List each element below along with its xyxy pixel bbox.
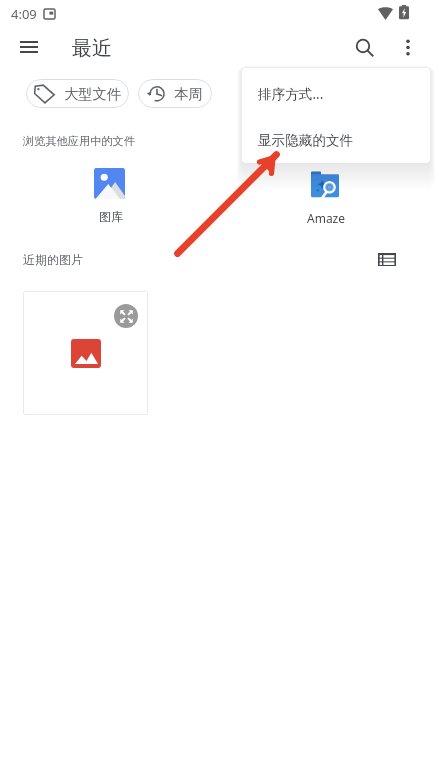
staticText: 排序方式...	[258, 84, 324, 103]
button[interactable]: 大型文件	[26, 79, 129, 108]
staticText: 浏览其他应用中的文件	[23, 134, 135, 148]
button[interactable]: Amaze	[297, 165, 353, 227]
staticText: 4:09	[11, 5, 37, 23]
button[interactable]: 排序方式...	[242, 68, 430, 118]
button[interactable]: Menu	[8, 34, 50, 60]
button[interactable]: Expand	[23, 291, 148, 415]
button[interactable]: Search	[344, 34, 384, 60]
staticText: 本周	[174, 85, 203, 103]
staticText: 大型文件	[64, 85, 122, 103]
button[interactable]: Expand	[114, 304, 138, 328]
staticText: 近期的图片	[23, 252, 83, 267]
staticText: Amaze	[307, 210, 346, 226]
button[interactable]: 显示隐藏的文件	[242, 118, 430, 163]
button[interactable]: 图库	[88, 162, 132, 230]
staticText: 图库	[99, 209, 123, 224]
button[interactable]: More options	[388, 34, 428, 60]
button[interactable]: 本周	[138, 79, 212, 108]
staticText: 最近	[72, 36, 112, 61]
button[interactable]: List view	[370, 242, 404, 276]
staticText: 显示隐藏的文件	[258, 132, 354, 149]
